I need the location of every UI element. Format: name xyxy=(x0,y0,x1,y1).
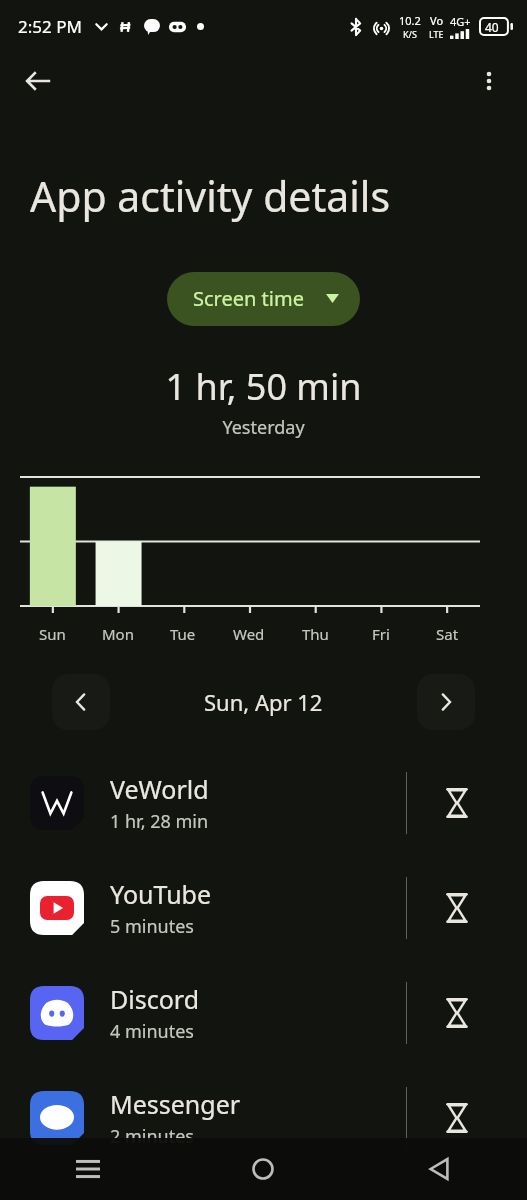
staticText: 40 xyxy=(485,19,499,35)
staticText: YouTube xyxy=(110,877,212,911)
staticText: 1 hr, 50 min xyxy=(0,362,527,411)
button[interactable]: Back xyxy=(12,55,64,107)
staticText: Mon xyxy=(102,624,134,644)
staticText: Messenger xyxy=(110,1087,241,1121)
staticText: K/S xyxy=(403,28,417,40)
staticText: 5 minutes xyxy=(110,914,194,939)
staticText: LTE xyxy=(429,28,444,40)
button[interactable]: Set app timer for VeWorld xyxy=(407,750,507,855)
button[interactable]: More options xyxy=(463,55,515,107)
staticText: 4G+ xyxy=(450,14,471,29)
button[interactable]: Discord xyxy=(0,960,527,1065)
staticText: Vo xyxy=(430,13,444,28)
staticText: 4 minutes xyxy=(110,1019,194,1044)
staticText: 2:52 PM xyxy=(18,15,82,38)
staticText: Wed xyxy=(233,624,265,644)
button[interactable]: Recent apps xyxy=(0,1138,175,1200)
staticText: Fri xyxy=(372,624,390,644)
staticText: Thu xyxy=(302,624,329,644)
button[interactable]: Next day xyxy=(417,674,475,730)
staticText: 1 hr, 28 min xyxy=(110,809,209,834)
button[interactable]: Home xyxy=(175,1138,351,1200)
button[interactable]: Set app timer for Messenger xyxy=(407,1065,507,1170)
staticText: Tue xyxy=(170,624,196,644)
staticText: Sun, Apr 12 xyxy=(204,687,323,717)
button[interactable]: Messenger xyxy=(0,1065,527,1170)
button[interactable]: Set app timer for YouTube xyxy=(407,855,507,960)
button[interactable]: Screen time xyxy=(167,272,360,326)
staticText: Screen time xyxy=(193,285,304,312)
button[interactable]: Set app timer for Discord xyxy=(407,960,507,1065)
staticText: Sun xyxy=(39,624,66,644)
button[interactable]: Previous day xyxy=(52,674,110,730)
staticText: Sat xyxy=(436,624,459,644)
button[interactable]: VeWorld xyxy=(0,750,527,855)
button[interactable]: Back xyxy=(351,1138,527,1200)
staticText: Discord xyxy=(110,982,200,1016)
staticText: 10.2 xyxy=(399,13,421,28)
staticText: 2 minutes xyxy=(110,1124,194,1149)
staticText: Yesterday xyxy=(0,415,527,440)
staticText: App activity details xyxy=(30,168,527,224)
staticText: VeWorld xyxy=(110,772,209,806)
button[interactable]: YouTube xyxy=(0,855,527,960)
